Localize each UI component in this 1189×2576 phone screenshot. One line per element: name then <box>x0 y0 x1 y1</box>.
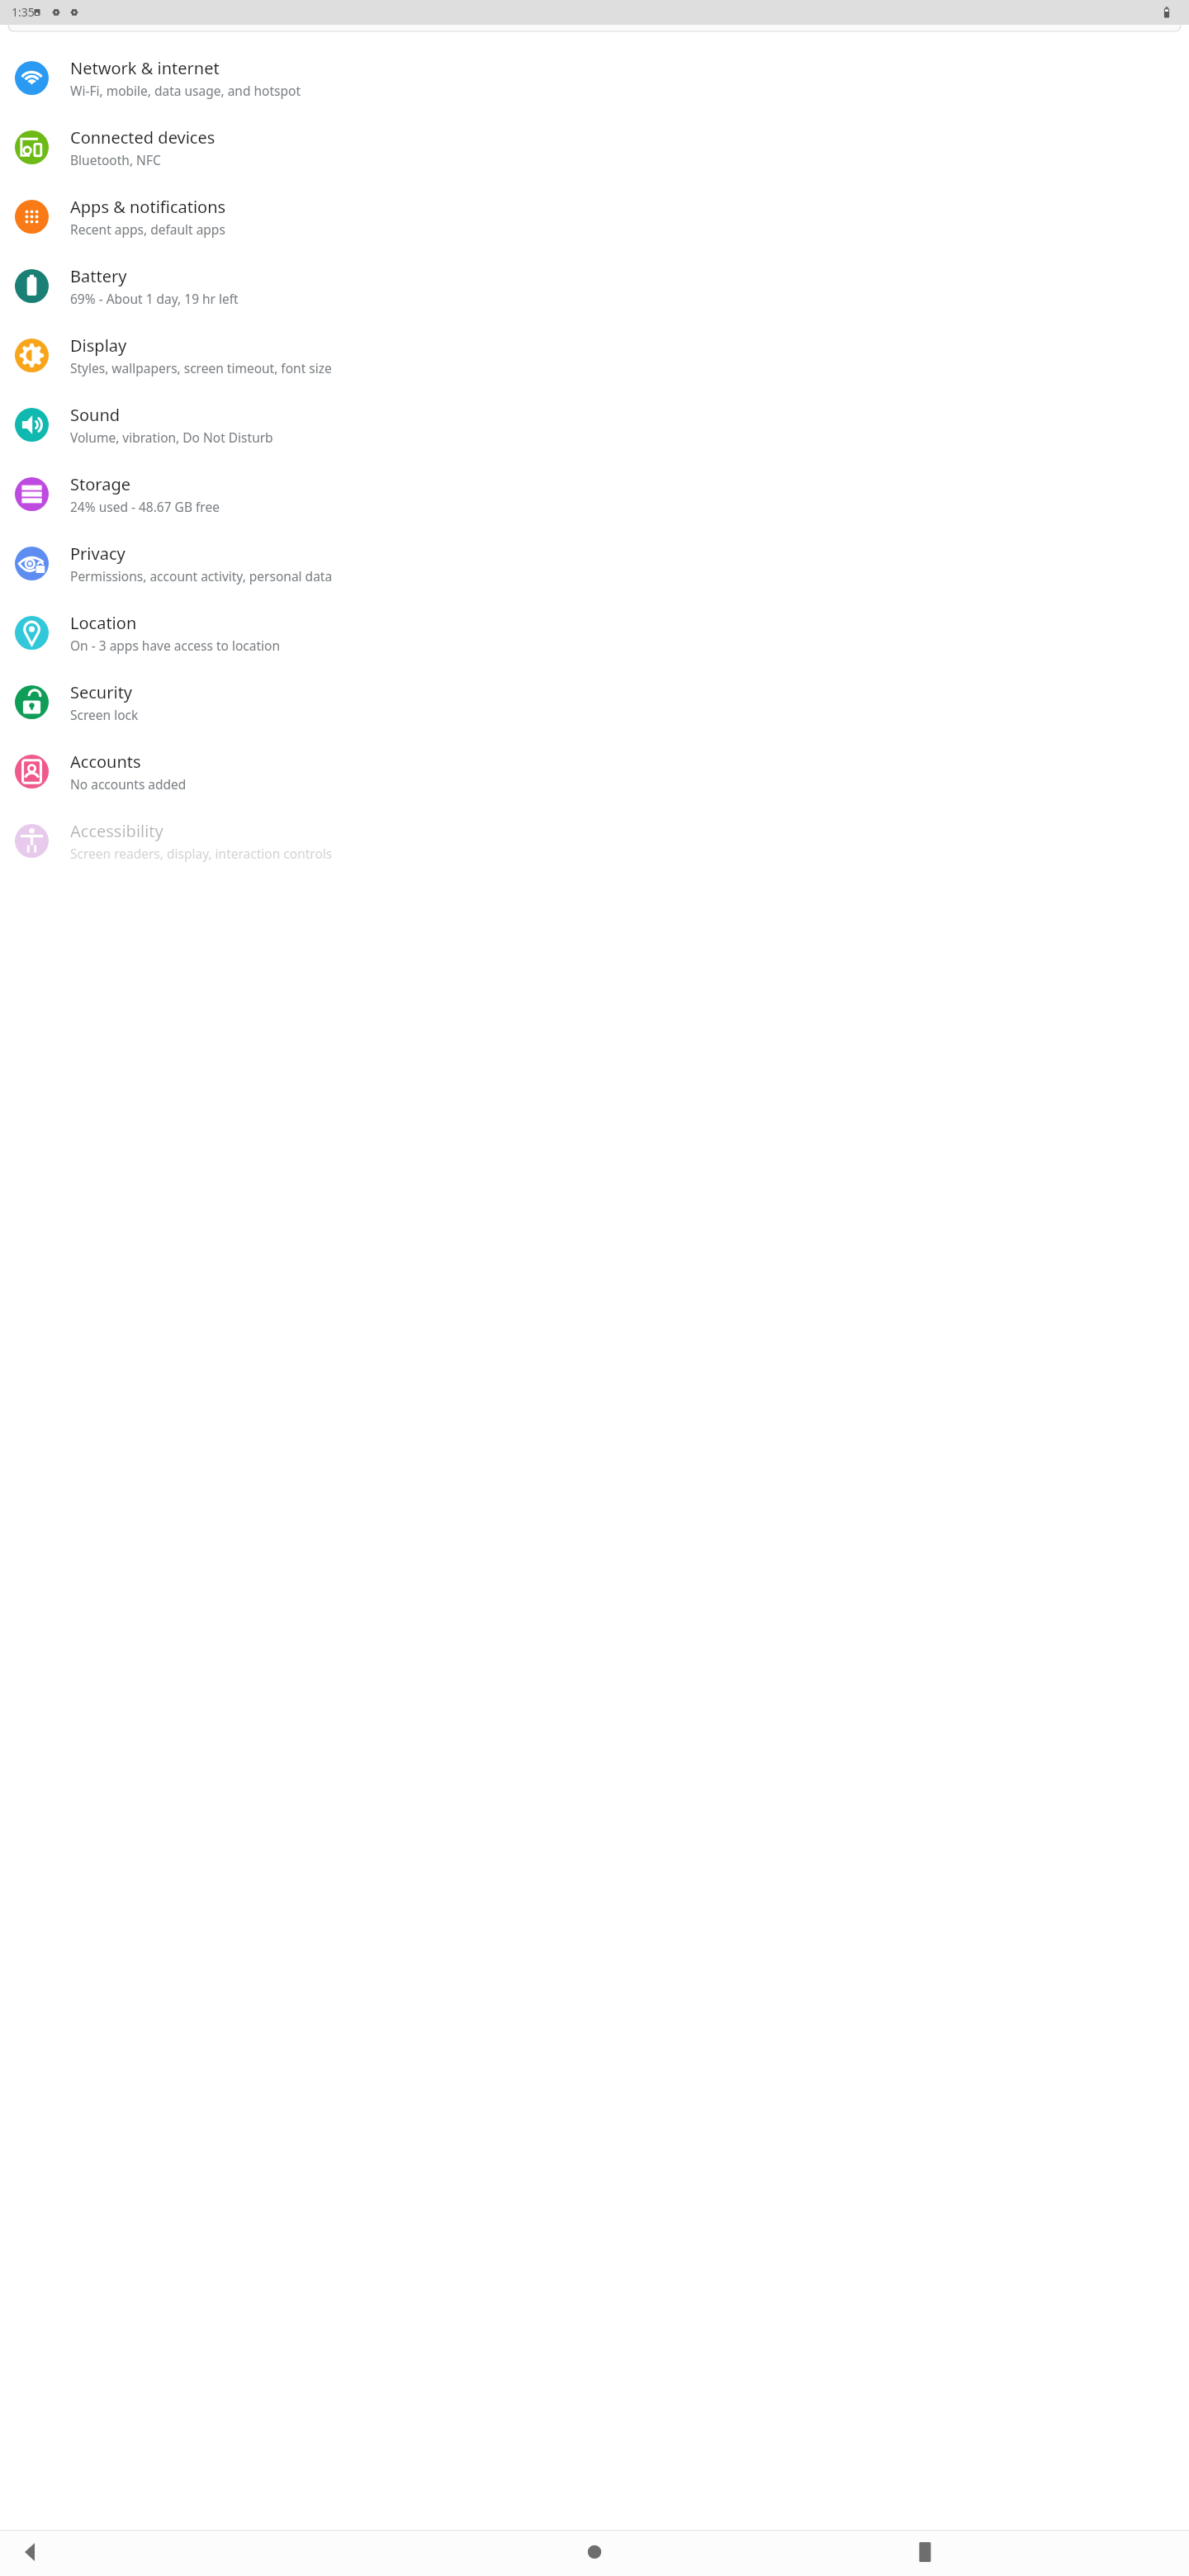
button[interactable]: Connected devices <box>0 112 1189 182</box>
button[interactable]: Storage <box>0 459 1189 528</box>
staticText: Connected devices <box>70 126 216 149</box>
staticText: Recent apps, default apps <box>70 220 225 238</box>
button[interactable]: Apps & notifications <box>0 182 1189 251</box>
button[interactable]: Home <box>553 2530 636 2576</box>
staticText: Apps & notifications <box>70 196 226 218</box>
staticText: 69% - About 1 day, 19 hr left <box>70 290 239 307</box>
button[interactable]: Back <box>0 2530 83 2576</box>
button[interactable]: Sound <box>0 390 1189 459</box>
button[interactable]: Accessibility <box>0 806 1189 875</box>
staticText: Wi-Fi, mobile, data usage, and hotspot <box>70 82 301 99</box>
staticText: Privacy <box>70 542 126 565</box>
staticText: Display <box>70 334 127 357</box>
staticText: Volume, vibration, Do Not Disturb <box>70 429 273 446</box>
button[interactable]: Accounts <box>0 736 1189 806</box>
staticText: On - 3 apps have access to location <box>70 637 281 654</box>
staticText: Accounts <box>70 751 141 773</box>
button[interactable]: Security <box>0 667 1189 736</box>
staticText: Network & internet <box>70 57 220 79</box>
button[interactable]: Location <box>0 598 1189 667</box>
staticText: Bluetooth, NFC <box>70 151 161 168</box>
staticText: No accounts added <box>70 775 187 793</box>
button[interactable]: Privacy <box>0 528 1189 598</box>
staticText: Storage <box>70 473 130 495</box>
staticText: Security <box>70 681 133 703</box>
staticText: Location <box>70 612 137 634</box>
button[interactable]: Network & internet <box>0 43 1189 112</box>
button[interactable]: Display <box>0 320 1189 390</box>
staticText: Permissions, account activity, personal … <box>70 567 333 585</box>
staticText: Accessibility <box>70 820 163 842</box>
staticText: Screen lock <box>70 706 139 723</box>
staticText: Screen readers, display, interaction con… <box>70 845 333 862</box>
staticText: Battery <box>70 265 127 287</box>
staticText: Styles, wallpapers, screen timeout, font… <box>70 359 332 376</box>
button[interactable]: Battery <box>0 251 1189 320</box>
staticText: Sound <box>70 404 121 426</box>
staticText: 24% used - 48.67 GB free <box>70 498 220 515</box>
button[interactable]: Recent apps <box>1106 2530 1189 2576</box>
staticText: 1:35 <box>12 4 35 20</box>
